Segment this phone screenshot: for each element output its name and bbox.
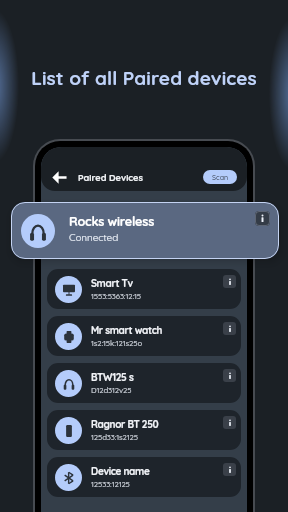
staticText: D12d312v25 bbox=[91, 385, 132, 395]
button[interactable]: Device info bbox=[223, 369, 236, 382]
staticText: Ragnor BT 250 bbox=[91, 418, 159, 431]
staticText: Rocks wireless bbox=[69, 213, 155, 229]
staticText: Mr smart watch bbox=[91, 324, 163, 337]
staticText: 125d33:1s2125 bbox=[91, 432, 138, 442]
button[interactable]: Rocks wireless bbox=[11, 202, 279, 259]
button[interactable]: Device info bbox=[223, 275, 236, 288]
staticText: Scan bbox=[212, 173, 229, 182]
button[interactable]: BTW125 s bbox=[47, 363, 241, 403]
staticText: Device name bbox=[91, 465, 150, 478]
button[interactable]: Device info bbox=[223, 416, 236, 429]
button[interactable]: Ragnor BT 250 bbox=[47, 410, 241, 450]
staticText: Paired Devices bbox=[78, 172, 143, 183]
button[interactable]: Device info bbox=[223, 463, 236, 476]
button[interactable]: Scan bbox=[203, 170, 237, 184]
staticText: BTW125 s bbox=[91, 371, 134, 384]
staticText: 1553:5363:12:15 bbox=[91, 291, 141, 301]
staticText: Connected bbox=[69, 231, 119, 244]
button[interactable]: Smart Tv bbox=[47, 269, 241, 309]
button[interactable]: Device info bbox=[255, 211, 270, 226]
button[interactable]: Device info bbox=[223, 322, 236, 335]
button[interactable]: Back bbox=[50, 168, 68, 186]
staticText: Smart Tv bbox=[91, 277, 133, 290]
staticText: List of all Paired devices bbox=[0, 66, 288, 90]
staticText: 12533:12125 bbox=[91, 479, 130, 489]
staticText: 1s2:15k:121s25o bbox=[91, 338, 143, 348]
button[interactable]: Device name bbox=[47, 457, 241, 497]
button[interactable]: Mr smart watch bbox=[47, 316, 241, 356]
